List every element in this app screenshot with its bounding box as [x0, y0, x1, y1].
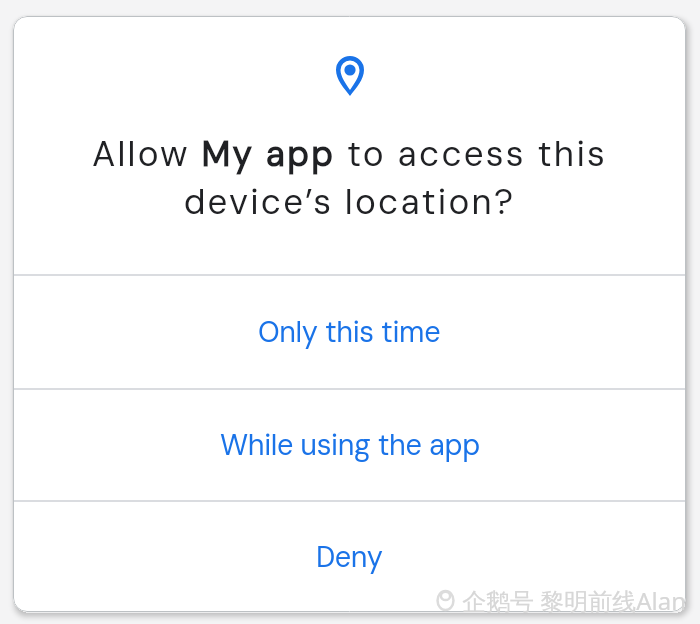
staticText: While using the app	[220, 426, 480, 464]
staticText: Only this time	[258, 313, 441, 351]
staticText: Allow My app to access this device’s loc…	[13, 131, 686, 224]
button[interactable]: While using the app	[13, 390, 686, 500]
staticText: Deny	[316, 538, 383, 576]
button[interactable]: Deny	[13, 502, 686, 612]
button[interactable]: Only this time	[13, 276, 686, 388]
staticText: 企鹅号 黎明前线Alan	[462, 584, 687, 617]
